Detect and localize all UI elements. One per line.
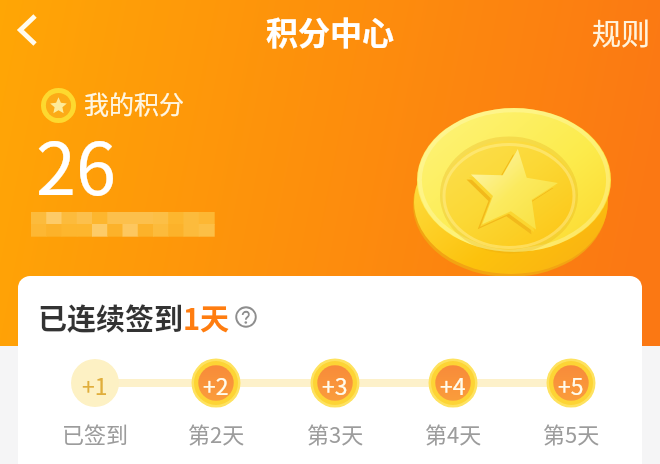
button[interactable]: +2 bbox=[170, 358, 262, 449]
button[interactable]: +4 bbox=[407, 358, 499, 449]
staticText: 已连续签到1天 bbox=[38, 296, 230, 338]
staticText: +2 bbox=[203, 368, 229, 401]
staticText: +1 bbox=[82, 368, 108, 401]
staticText: 26 bbox=[36, 111, 116, 215]
staticText: +4 bbox=[440, 368, 466, 401]
staticText: 我的积分 bbox=[84, 85, 185, 121]
button[interactable]: +3 bbox=[289, 358, 381, 449]
staticText: +5 bbox=[558, 368, 584, 401]
staticText: +3 bbox=[322, 368, 348, 401]
button[interactable]: Help bbox=[235, 306, 257, 328]
button[interactable]: +5 bbox=[525, 358, 617, 449]
staticText: 已签到 bbox=[62, 417, 129, 449]
staticText: 第2天 bbox=[188, 417, 245, 449]
staticText: 第3天 bbox=[307, 417, 364, 449]
button[interactable]: Back bbox=[2, 4, 54, 56]
button[interactable]: 规则 bbox=[579, 1, 660, 63]
staticText: 第5天 bbox=[543, 417, 600, 449]
staticText: 规则 bbox=[592, 11, 651, 53]
staticText: 积分中心 bbox=[0, 8, 660, 54]
staticText: 第4天 bbox=[425, 417, 482, 449]
button[interactable]: +1 bbox=[49, 358, 141, 449]
